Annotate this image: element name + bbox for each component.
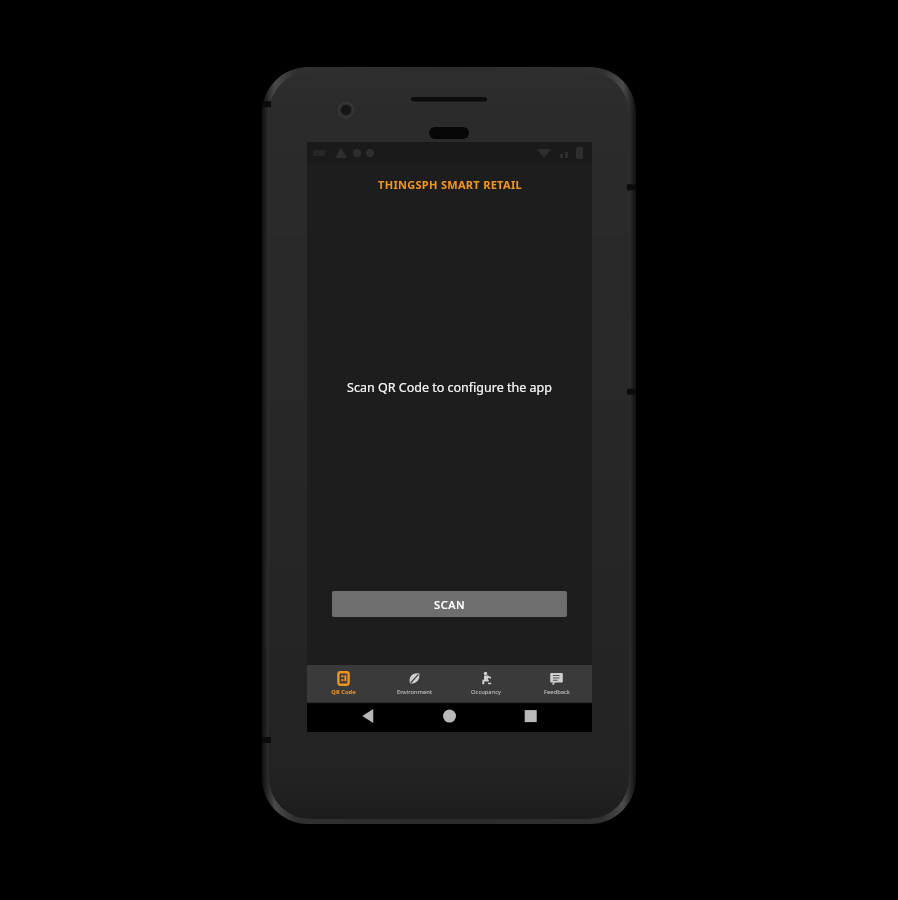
staticText: Environment: [397, 688, 432, 696]
staticText: THINGSPH SMART RETAIL: [378, 177, 522, 192]
staticText: SCAN: [434, 597, 466, 612]
button[interactable]: SCAN: [332, 591, 567, 617]
button[interactable]: Environment: [379, 665, 450, 702]
staticText: Scan QR Code to configure the app: [347, 379, 552, 396]
staticText: Feedback: [544, 688, 570, 696]
staticText: QR Code: [331, 688, 356, 696]
button[interactable]: Feedback: [521, 665, 592, 702]
button[interactable]: Occupancy: [450, 665, 521, 702]
button[interactable]: QR Code: [307, 665, 379, 702]
staticText: Occupancy: [471, 688, 501, 696]
